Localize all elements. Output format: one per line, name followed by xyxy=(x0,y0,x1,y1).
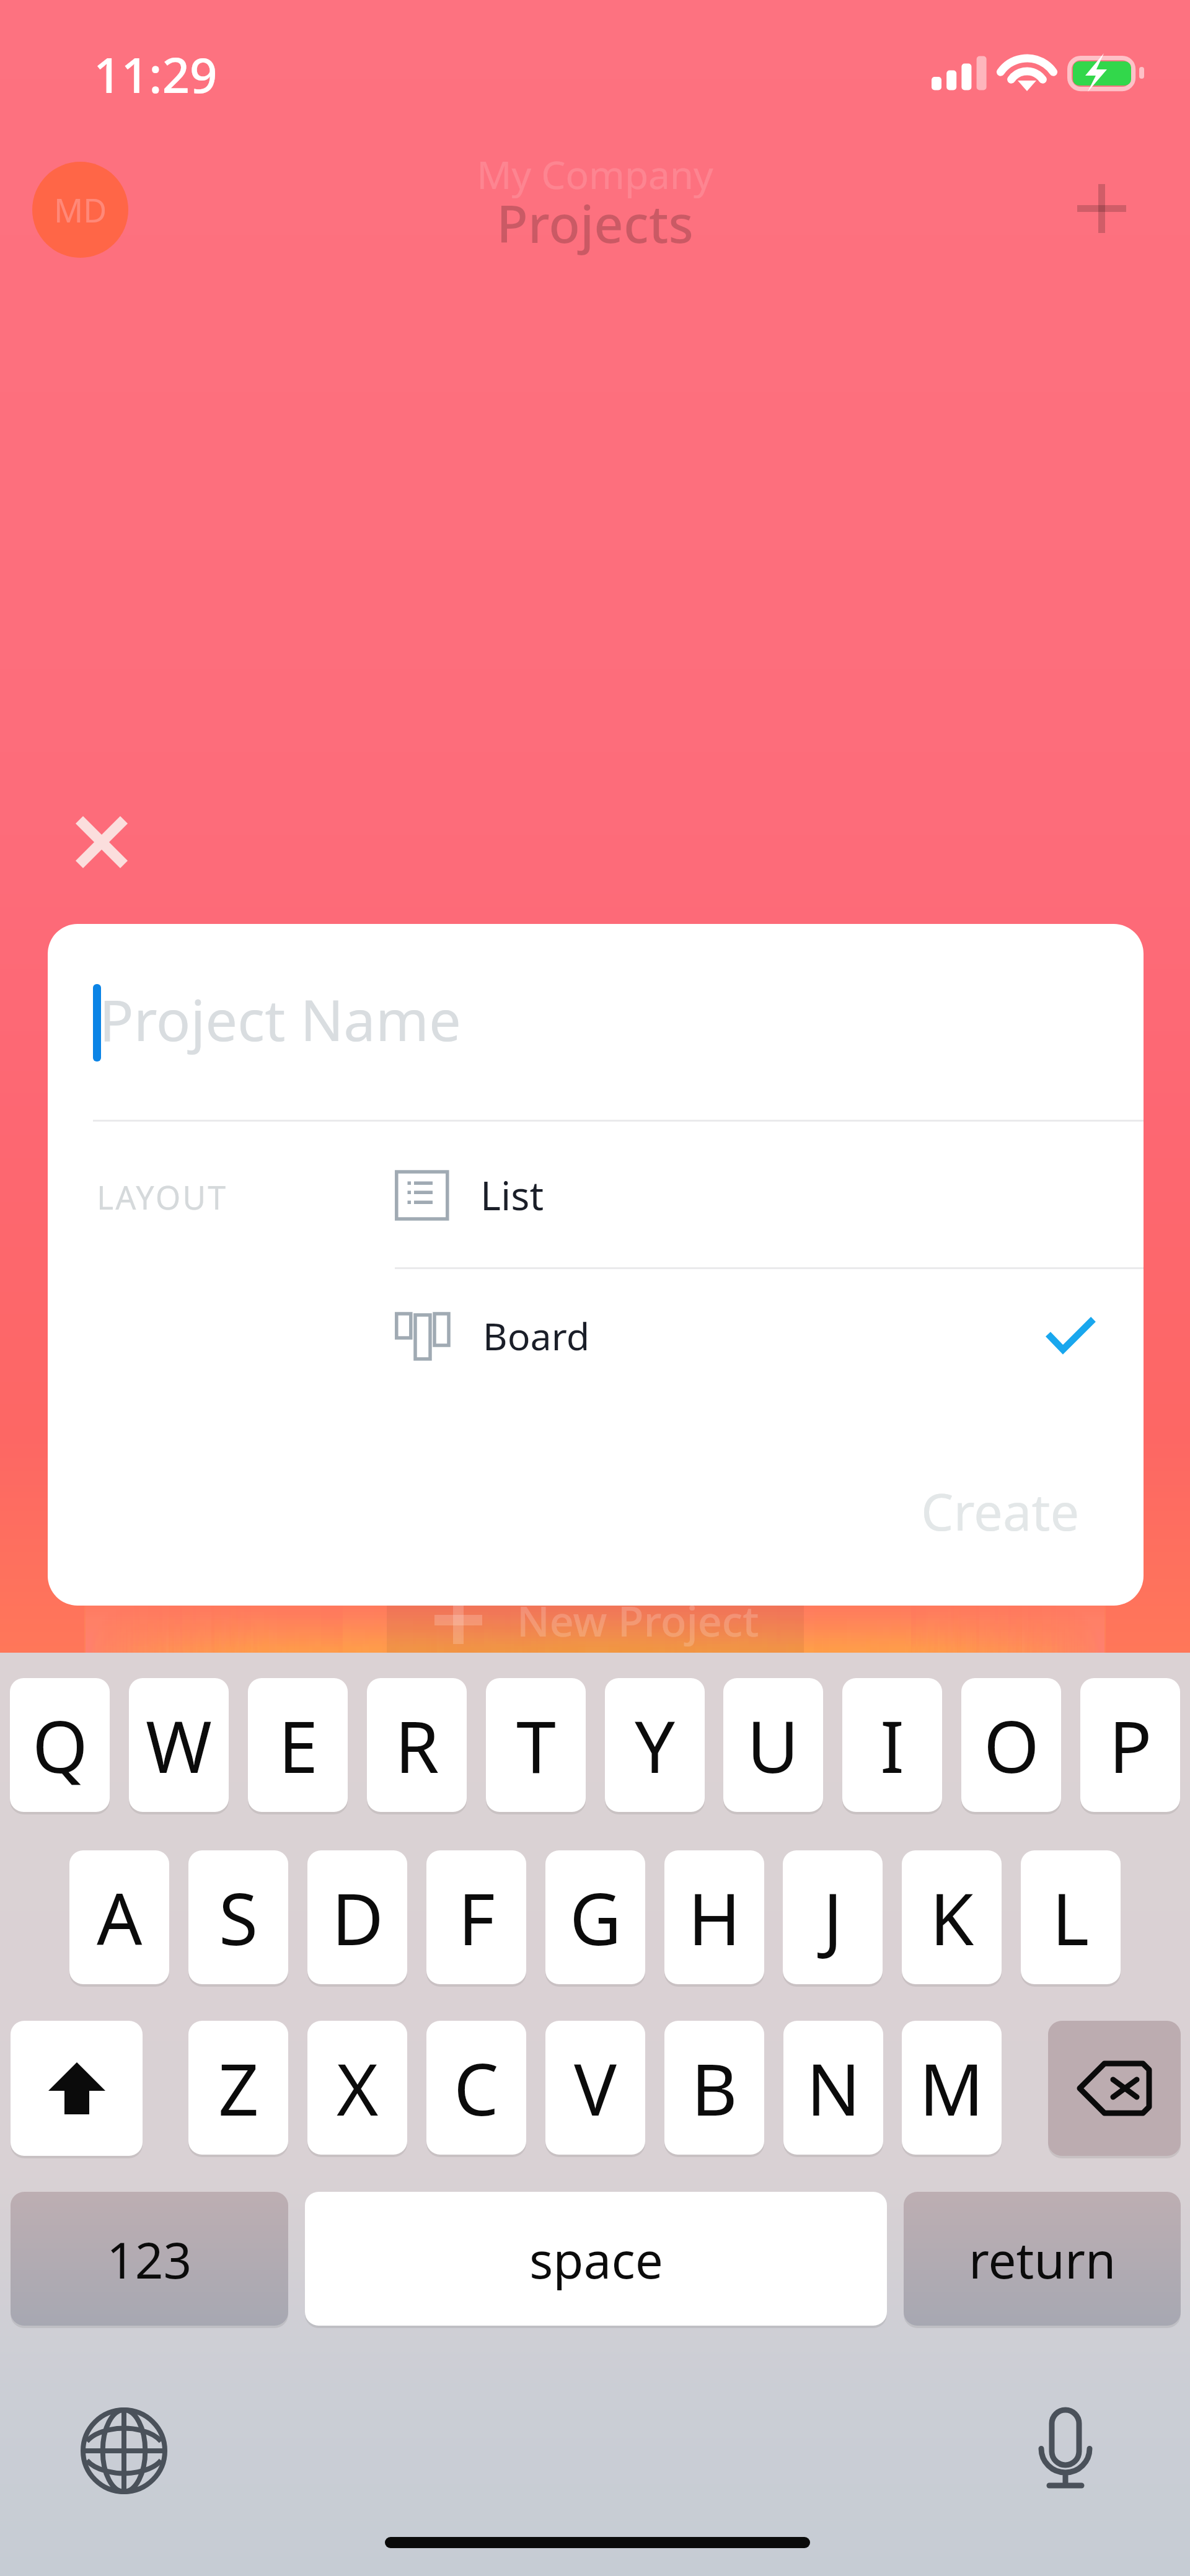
staticText: U xyxy=(747,1697,800,1794)
staticText: 123 xyxy=(107,2225,192,2293)
button[interactable]: C xyxy=(426,2021,526,2155)
button[interactable]: W xyxy=(129,1678,229,1812)
staticText: W xyxy=(146,1697,212,1794)
button[interactable]: Backspace xyxy=(1048,2021,1181,2156)
staticText: A xyxy=(97,1869,143,1966)
staticText: LAYOUT xyxy=(97,1175,228,1219)
button[interactable]: D xyxy=(307,1850,407,1984)
button[interactable]: Add project xyxy=(1058,165,1145,252)
staticText: Project Name xyxy=(99,980,461,1058)
staticText: 11:29 xyxy=(94,42,218,107)
button[interactable]: F xyxy=(426,1850,526,1984)
staticText: R xyxy=(395,1697,439,1794)
staticText: Y xyxy=(635,1697,676,1794)
staticText: X xyxy=(337,2039,379,2137)
button[interactable]: O xyxy=(961,1678,1061,1812)
button[interactable]: New Project xyxy=(387,1549,804,1653)
button[interactable]: U xyxy=(723,1678,823,1812)
button[interactable]: T xyxy=(486,1678,586,1812)
staticText: L xyxy=(1052,1869,1090,1966)
button[interactable]: G xyxy=(545,1850,645,1984)
staticText: C xyxy=(454,2039,499,2137)
staticText: M xyxy=(919,2039,984,2137)
button[interactable]: 123 xyxy=(11,2192,288,2326)
button[interactable]: Board xyxy=(395,1267,1144,1404)
button[interactable]: Q xyxy=(10,1678,110,1812)
button[interactable]: K xyxy=(902,1850,1002,1984)
button[interactable]: I xyxy=(842,1678,942,1812)
button[interactable]: Close xyxy=(58,799,145,886)
staticText: return xyxy=(969,2225,1116,2293)
staticText: MD xyxy=(54,188,107,232)
staticText: space xyxy=(529,2225,663,2293)
staticText: Q xyxy=(32,1697,88,1794)
staticText: Projects xyxy=(496,188,694,258)
button[interactable]: Dictate xyxy=(1016,2395,1115,2507)
button[interactable]: X xyxy=(307,2021,407,2155)
staticText: G xyxy=(570,1869,622,1966)
button[interactable]: P xyxy=(1080,1678,1180,1812)
button[interactable]: return xyxy=(904,2192,1181,2326)
button[interactable]: N xyxy=(783,2021,883,2155)
staticText: O xyxy=(984,1697,1039,1794)
button[interactable]: A xyxy=(69,1850,169,1984)
staticText: J xyxy=(823,1869,843,1966)
staticText: H xyxy=(688,1869,741,1966)
staticText: I xyxy=(880,1697,904,1794)
staticText: P xyxy=(1109,1697,1152,1794)
button[interactable]: M xyxy=(902,2021,1002,2155)
staticText: T xyxy=(516,1697,556,1794)
button[interactable]: Shift xyxy=(11,2021,143,2156)
staticText: Board xyxy=(483,1310,590,1361)
button[interactable]: S xyxy=(188,1850,288,1984)
staticText: S xyxy=(219,1869,258,1966)
staticText: D xyxy=(332,1869,384,1966)
button[interactable]: space xyxy=(305,2192,887,2326)
staticText: My Company xyxy=(477,148,713,200)
button[interactable]: Z xyxy=(188,2021,288,2155)
button[interactable]: Account xyxy=(32,162,128,258)
staticText: Create xyxy=(921,1475,1080,1545)
staticText: List xyxy=(480,1169,544,1222)
staticText: K xyxy=(930,1869,974,1966)
staticText: B xyxy=(691,2039,738,2137)
button[interactable]: H xyxy=(664,1850,764,1984)
button[interactable]: R xyxy=(367,1678,467,1812)
button[interactable]: Y xyxy=(605,1678,705,1812)
staticText: F xyxy=(458,1869,495,1966)
button[interactable]: J xyxy=(783,1850,883,1984)
staticText: V xyxy=(574,2039,617,2137)
staticText: New Project xyxy=(517,1591,759,1649)
button[interactable]: B xyxy=(664,2021,764,2155)
button[interactable]: V xyxy=(545,2021,645,2155)
button[interactable]: L xyxy=(1021,1850,1121,1984)
button[interactable]: Create xyxy=(903,1457,1144,1550)
button[interactable]: E xyxy=(248,1678,348,1812)
button[interactable]: List xyxy=(395,1127,1144,1264)
button[interactable]: Switch keyboard xyxy=(68,2395,180,2507)
staticText: Z xyxy=(218,2039,259,2137)
staticText: E xyxy=(278,1697,318,1794)
staticText: N xyxy=(806,2039,861,2137)
